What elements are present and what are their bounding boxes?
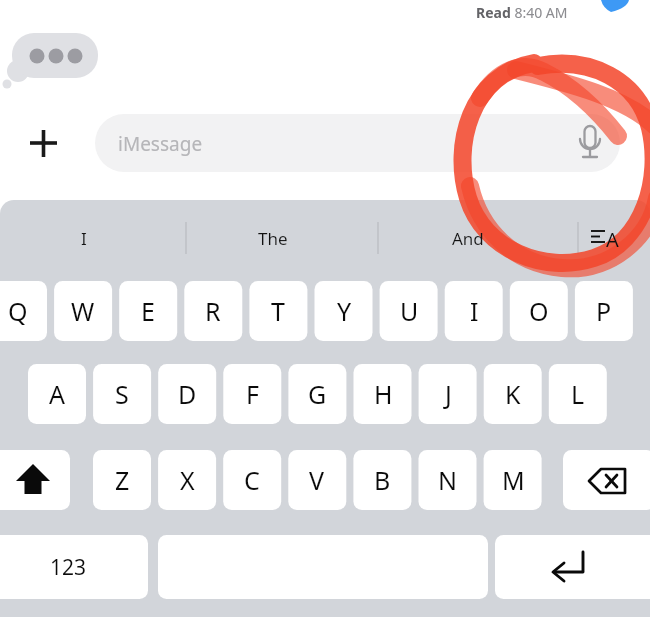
staticText: I xyxy=(81,227,87,250)
button[interactable]: Q xyxy=(0,281,47,341)
staticText: C xyxy=(244,463,260,497)
staticText: D xyxy=(178,377,197,411)
staticText: Q xyxy=(8,294,28,328)
button[interactable]: Z xyxy=(93,450,151,510)
staticText: S xyxy=(115,377,129,411)
button[interactable]: E xyxy=(119,281,177,341)
staticText: K xyxy=(505,377,521,411)
button[interactable]: M xyxy=(484,450,542,510)
button[interactable]: W xyxy=(54,281,112,341)
button[interactable]: T xyxy=(249,281,307,341)
button[interactable]: Delete xyxy=(563,450,650,510)
staticText: T xyxy=(271,294,285,328)
button[interactable]: Dictate xyxy=(565,118,615,168)
button[interactable]: Return xyxy=(495,535,650,599)
staticText: J xyxy=(445,377,452,411)
button[interactable]: J xyxy=(419,364,477,424)
staticText: B xyxy=(374,463,391,497)
staticText: Y xyxy=(337,294,352,328)
button[interactable]: F xyxy=(223,364,281,424)
staticText: V xyxy=(309,463,325,497)
button[interactable]: L xyxy=(549,364,607,424)
staticText: I xyxy=(470,294,479,328)
button[interactable]: H xyxy=(354,364,412,424)
button[interactable]: I xyxy=(445,281,503,341)
button[interactable]: Numbers xyxy=(0,535,148,599)
button[interactable]: Suggestion And xyxy=(380,210,576,266)
staticText: N xyxy=(438,463,458,497)
staticText: iMessage xyxy=(118,131,203,157)
button[interactable]: A xyxy=(28,364,86,424)
button[interactable]: R xyxy=(184,281,242,341)
staticText: Read 8:40 AM xyxy=(476,3,568,22)
button[interactable]: Message input field xyxy=(95,114,620,172)
button[interactable]: Y xyxy=(315,281,373,341)
staticText: X xyxy=(180,463,195,497)
button[interactable]: C xyxy=(223,450,281,510)
staticText: G xyxy=(308,377,327,411)
staticText: 123 xyxy=(50,553,87,582)
staticText: P xyxy=(596,294,612,328)
button[interactable]: B xyxy=(353,450,411,510)
staticText: L xyxy=(571,377,585,411)
button[interactable]: X xyxy=(158,450,216,510)
button[interactable]: V xyxy=(288,450,346,510)
staticText: A xyxy=(606,226,619,253)
staticText: R xyxy=(205,294,221,328)
button[interactable]: N xyxy=(419,450,477,510)
staticText: U xyxy=(400,294,419,328)
staticText: And xyxy=(452,227,484,250)
button[interactable]: P xyxy=(575,281,633,341)
staticText: The xyxy=(258,227,288,250)
staticText: W xyxy=(71,294,95,328)
button[interactable]: G xyxy=(288,364,346,424)
button[interactable]: S xyxy=(93,364,151,424)
staticText: F xyxy=(246,377,259,411)
staticText: M xyxy=(502,463,525,497)
button[interactable]: O xyxy=(510,281,568,341)
staticText: Z xyxy=(115,463,130,497)
button[interactable]: Suggestion I xyxy=(0,210,186,266)
staticText: O xyxy=(529,294,549,328)
button[interactable]: K xyxy=(484,364,542,424)
button[interactable]: Suggestion The xyxy=(188,210,376,266)
button[interactable]: D xyxy=(158,364,216,424)
button[interactable]: Add attachment xyxy=(14,114,72,172)
button[interactable]: Text formatting xyxy=(580,210,650,266)
button[interactable]: Shift xyxy=(0,450,70,510)
staticText: A xyxy=(49,377,65,411)
staticText: H xyxy=(374,377,393,411)
button[interactable]: U xyxy=(380,281,438,341)
staticText: E xyxy=(141,294,155,328)
